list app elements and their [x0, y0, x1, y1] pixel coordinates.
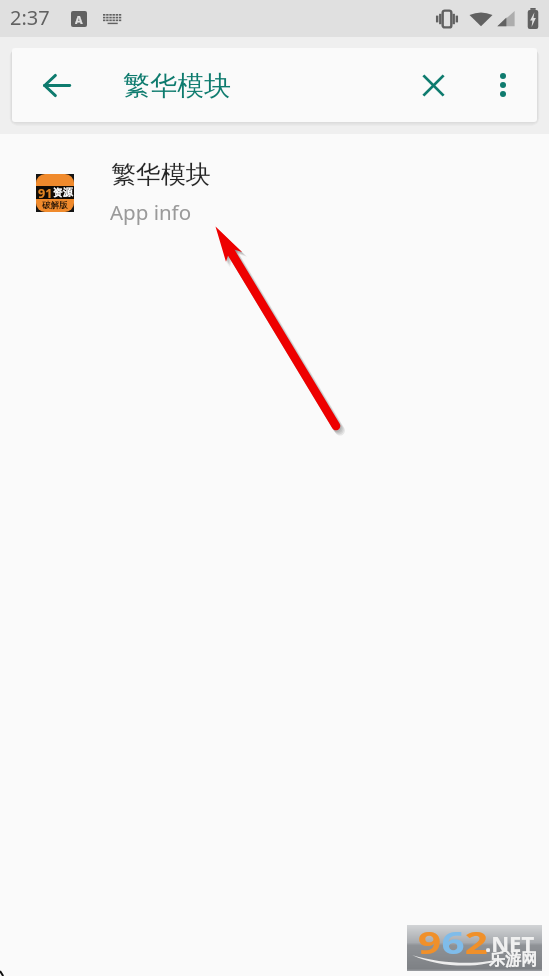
staticText: App info — [110, 198, 192, 226]
staticText: A — [75, 12, 83, 27]
staticText: 6 — [441, 921, 465, 963]
staticText: 乐游网 — [489, 950, 537, 970]
staticText: 2:37 — [10, 4, 50, 31]
staticText: 破解版 — [42, 200, 68, 211]
staticText: 91 — [38, 185, 53, 198]
staticText: 9 — [418, 921, 441, 963]
button[interactable]: 91 — [0, 134, 549, 242]
button[interactable]: More options — [480, 62, 526, 108]
staticText: 2 — [465, 921, 488, 963]
staticText: .NET — [485, 928, 535, 958]
button[interactable]: Back — [33, 62, 79, 108]
button[interactable]: Clear — [411, 63, 455, 107]
staticText: 繁华模块 — [123, 69, 231, 103]
staticText: 资源 — [53, 186, 73, 199]
staticText: 繁华模块 — [111, 159, 211, 190]
